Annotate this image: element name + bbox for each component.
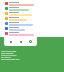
button[interactable] (5, 6, 35, 11)
button[interactable] (5, 26, 35, 31)
button[interactable] (5, 16, 35, 21)
button[interactable] (5, 1, 35, 6)
staticText: Track every habit with beautiful progres… (1, 50, 20, 60)
button[interactable] (5, 21, 35, 26)
button[interactable] (5, 11, 35, 16)
button[interactable]: Home (7, 38, 14, 45)
button[interactable]: Add habit (27, 38, 34, 45)
button[interactable]: Stats (17, 38, 24, 45)
button[interactable] (5, 31, 35, 36)
